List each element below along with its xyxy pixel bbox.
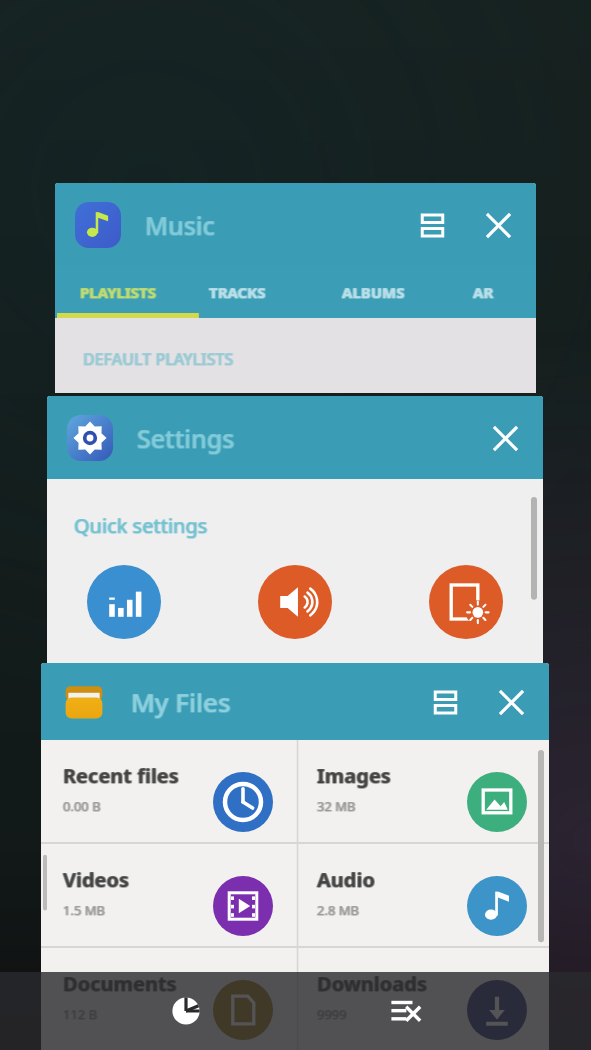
button[interactable]: Close xyxy=(489,680,533,724)
staticText: Settings xyxy=(138,421,236,455)
staticText: AR xyxy=(473,283,494,303)
staticText: Recent files xyxy=(62,763,178,790)
button[interactable]: My Files xyxy=(41,663,549,1050)
staticText: AR xyxy=(472,282,493,302)
button[interactable]: Audio xyxy=(295,844,549,946)
staticText: DEFAULT PLAYLISTS xyxy=(84,348,235,370)
staticText: DEFAULT PLAYLISTS xyxy=(83,348,234,370)
staticText: Settings xyxy=(137,422,235,456)
button[interactable]: Sound mode xyxy=(258,565,332,639)
staticText: 1.5 MB xyxy=(64,901,106,919)
staticText: PLAYLISTS xyxy=(80,283,156,303)
staticText: Recent files xyxy=(62,762,178,789)
staticText: Audio xyxy=(317,866,375,893)
staticText: 2.8 MB xyxy=(317,901,359,919)
staticText: DEFAULT PLAYLISTS xyxy=(82,348,233,370)
staticText: Settings xyxy=(137,421,235,455)
staticText: Documents xyxy=(63,970,177,997)
staticText: Images xyxy=(316,762,390,789)
staticText: 2.8 MB xyxy=(317,902,359,920)
button[interactable]: Settings xyxy=(47,396,543,666)
staticText: Recent files xyxy=(63,762,179,789)
staticText: Recent files xyxy=(62,762,178,789)
staticText: DEFAULT PLAYLISTS xyxy=(84,348,235,370)
staticText: My Files xyxy=(131,685,231,720)
staticText: Documents xyxy=(64,970,178,997)
button[interactable]: Close xyxy=(476,203,520,247)
staticText: AR xyxy=(473,282,494,302)
button[interactable]: PLAYLISTS xyxy=(55,266,195,318)
button[interactable]: Screen brightness xyxy=(429,565,503,639)
staticText: 0.00 B xyxy=(63,797,101,815)
staticText: Documents xyxy=(62,970,176,997)
staticText: TRACKS xyxy=(209,283,266,303)
staticText: 9999 xyxy=(316,1005,346,1023)
staticText: Music xyxy=(145,208,215,242)
staticText: 0.00 B xyxy=(63,797,101,815)
button[interactable]: Split screen xyxy=(410,203,454,247)
staticText: My Files xyxy=(132,684,232,719)
button[interactable]: Task manager xyxy=(154,979,218,1043)
staticText: ALBUMS xyxy=(342,282,405,302)
staticText: Documents xyxy=(64,970,178,997)
staticText: Settings xyxy=(138,422,236,456)
staticText: 9999 xyxy=(316,1005,346,1023)
staticText: Videos xyxy=(63,866,130,893)
button[interactable]: Images xyxy=(295,740,549,842)
staticText: DEFAULT PLAYLISTS xyxy=(82,349,233,371)
staticText: 32 MB xyxy=(318,797,357,815)
staticText: ALBUMS xyxy=(343,282,406,302)
button[interactable]: Videos xyxy=(41,844,295,946)
staticText: Music xyxy=(146,208,216,242)
staticText: TRACKS xyxy=(210,283,267,303)
button[interactable]: Downloads xyxy=(295,948,549,1050)
staticText: AR xyxy=(474,282,495,302)
button[interactable]: Close all xyxy=(373,979,437,1043)
staticText: 2.8 MB xyxy=(317,901,359,919)
staticText: TRACKS xyxy=(209,282,266,302)
staticText: AR xyxy=(472,283,493,303)
staticText: PLAYLISTS xyxy=(80,282,156,302)
button[interactable]: TRACKS xyxy=(195,266,330,318)
button[interactable]: AR xyxy=(465,266,536,318)
staticText: 0.00 B xyxy=(62,798,100,816)
staticText: Documents xyxy=(63,970,177,997)
staticText: Downloads xyxy=(317,970,427,997)
staticText: Music xyxy=(145,208,215,242)
staticText: My Files xyxy=(131,684,231,719)
staticText: 1.5 MB xyxy=(62,901,104,919)
button[interactable]: Data usage xyxy=(87,565,161,639)
staticText: Audio xyxy=(317,866,375,893)
staticText: ALBUMS xyxy=(341,283,404,303)
staticText: Settings xyxy=(137,421,235,455)
staticText: 32 MB xyxy=(317,797,356,815)
staticText: Music xyxy=(145,208,215,242)
staticText: Images xyxy=(318,762,392,789)
staticText: 0.00 B xyxy=(63,798,101,816)
staticText: Downloads xyxy=(317,970,427,997)
staticText: ALBUMS xyxy=(342,282,405,302)
staticText: My Files xyxy=(132,684,232,719)
staticText: 9999 xyxy=(316,1006,346,1024)
staticText: 112 B xyxy=(62,1006,97,1024)
button[interactable]: Documents xyxy=(41,948,295,1050)
staticText: Images xyxy=(317,762,391,789)
staticText: 9999 xyxy=(318,1006,348,1024)
button[interactable]: Recent files xyxy=(41,740,295,842)
staticText: 0.00 B xyxy=(64,798,102,816)
staticText: DEFAULT PLAYLISTS xyxy=(82,348,233,370)
staticText: 32 MB xyxy=(316,798,355,816)
staticText: PLAYLISTS xyxy=(81,282,157,302)
button[interactable]: Split screen xyxy=(423,680,467,724)
staticText: Quick settings xyxy=(75,512,209,539)
staticText: Music xyxy=(144,208,214,242)
staticText: PLAYLISTS xyxy=(79,282,155,302)
button[interactable]: Close xyxy=(483,416,527,460)
staticText: DEFAULT PLAYLISTS xyxy=(84,349,235,371)
staticText: DEFAULT PLAYLISTS xyxy=(83,348,234,370)
staticText: 1.5 MB xyxy=(64,902,106,920)
staticText: 1.5 MB xyxy=(63,901,105,919)
button[interactable]: ALBUMS xyxy=(330,266,465,318)
staticText: PLAYLISTS xyxy=(80,282,156,302)
staticText: 32 MB xyxy=(318,797,357,815)
